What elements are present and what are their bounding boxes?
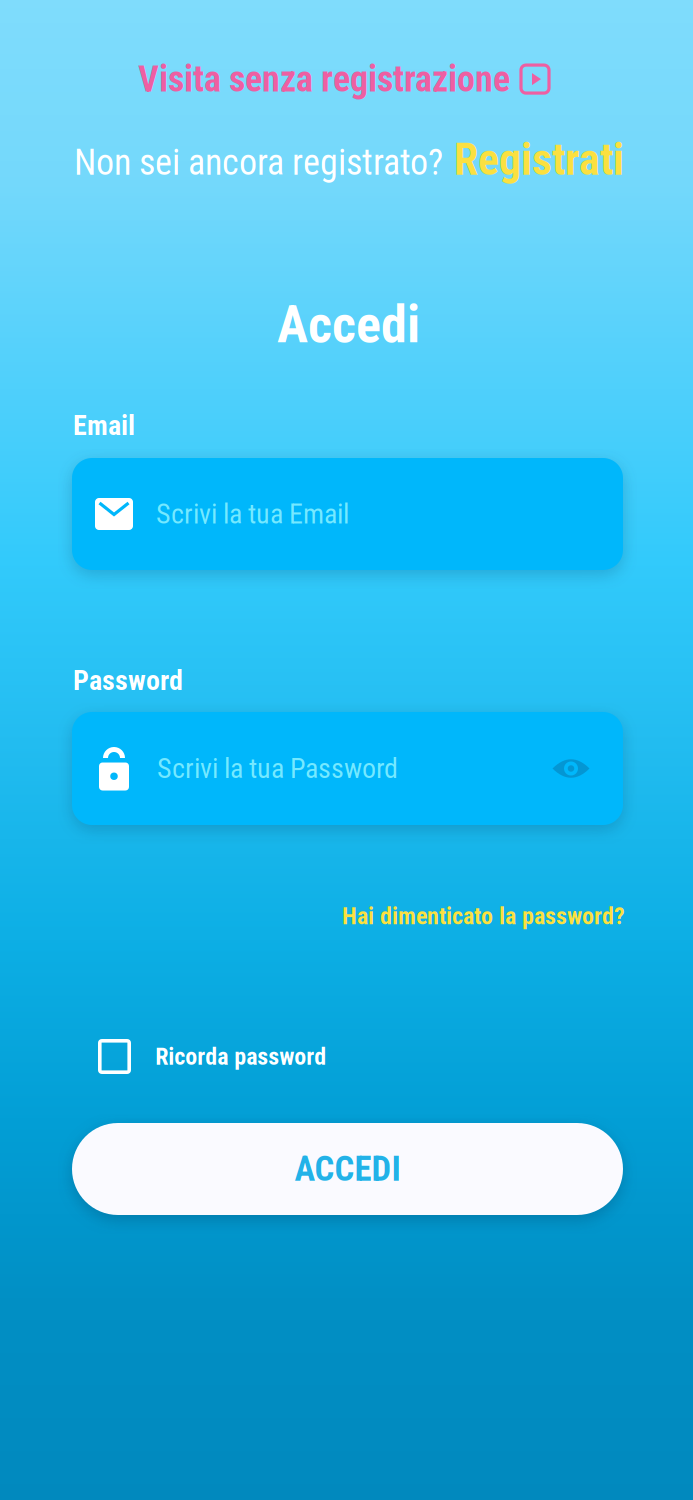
staticText: Scrivi la tua Password [157,752,398,785]
button[interactable]: Ricorda password [100,1041,326,1072]
staticText: Accedi [277,294,420,355]
staticText: Visita senza registrazione [138,58,510,100]
staticText: Scrivi la tua Email [156,498,349,530]
staticText: Hai dimenticato la password? [342,902,625,930]
button[interactable]: Hai dimenticato la password? [342,898,625,934]
button[interactable]: ACCEDI [72,1123,623,1215]
staticText: Non sei ancora registrato? [74,141,443,184]
staticText: Password [73,664,183,697]
staticText: Registrati [454,134,624,186]
button[interactable]: Mostra password [552,756,590,781]
button[interactable]: Visita senza registrazione [132,54,555,104]
staticText: Email [73,409,135,442]
staticText: ACCEDI [294,1149,400,1189]
staticText: Ricorda password [155,1042,326,1070]
button[interactable]: Registrati [454,134,624,186]
